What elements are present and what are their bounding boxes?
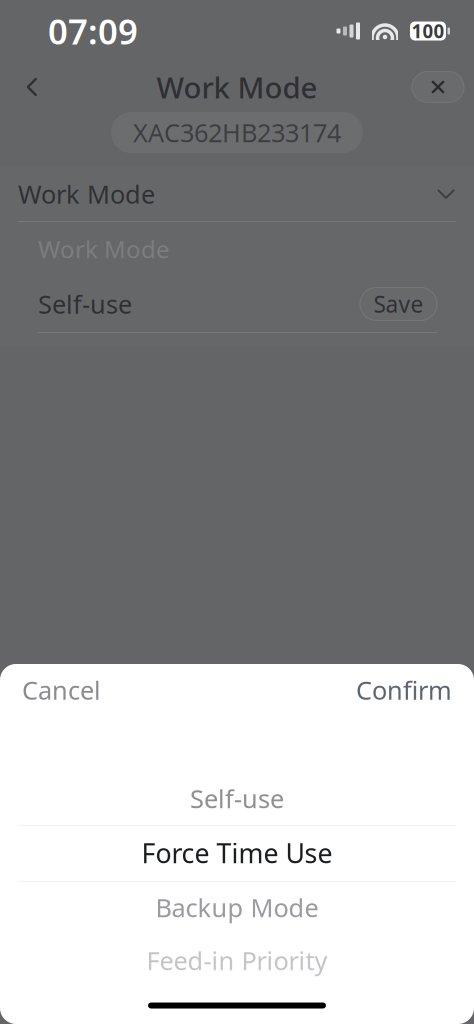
button[interactable]: Force Time Use (0, 825, 474, 881)
staticText: 07:09 (48, 8, 138, 54)
staticText: Backup Mode (155, 891, 318, 924)
button[interactable]: Work Mode (0, 167, 474, 221)
staticText: Self-use (190, 782, 284, 815)
staticText: Feed-in Priority (146, 944, 327, 977)
button[interactable]: XAC362HB233174 (111, 112, 363, 153)
staticText: Save (373, 289, 423, 319)
staticText: 100 (411, 19, 444, 43)
button[interactable]: Back (10, 65, 54, 109)
staticText: Force Time Use (141, 835, 332, 871)
button[interactable]: Cancel (2, 664, 121, 716)
staticText: Work Mode (156, 67, 317, 106)
button[interactable]: Save (360, 287, 437, 320)
button[interactable]: Feed-in Priority (0, 934, 474, 987)
staticText: Self-use (38, 287, 132, 321)
staticText: Work Mode (18, 177, 155, 211)
staticText: Cancel (22, 673, 101, 707)
button[interactable]: Self-use (38, 280, 360, 328)
staticText: Confirm (356, 673, 452, 707)
button[interactable]: Close (412, 71, 464, 102)
staticText: XAC362HB233174 (133, 116, 341, 149)
staticText: Work Mode (38, 233, 170, 265)
button[interactable]: Confirm (336, 664, 472, 716)
button[interactable]: Self-use (0, 772, 474, 825)
button[interactable]: Backup Mode (0, 881, 474, 934)
